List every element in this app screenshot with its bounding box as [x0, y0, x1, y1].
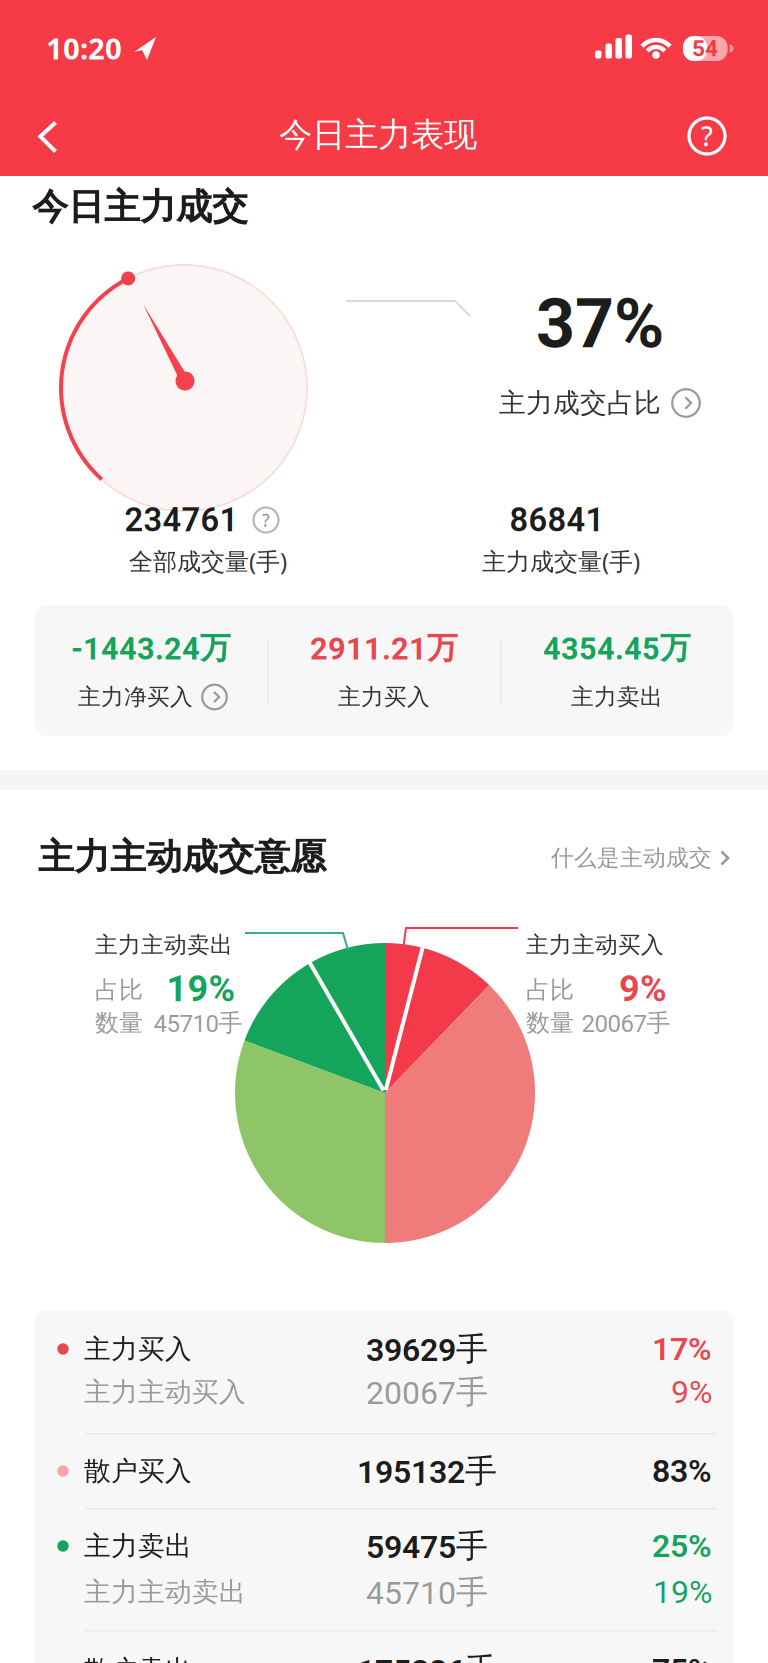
staticText: 主力净买入 — [78, 683, 193, 711]
staticText: 主力主动买入 — [526, 931, 664, 959]
staticText: 2911.21万 — [310, 629, 458, 667]
staticText: 10:20 — [46, 28, 122, 67]
staticText: 59475手 — [366, 1526, 488, 1566]
staticText: 54 — [692, 35, 718, 62]
staticText: 19% — [166, 968, 235, 1010]
staticText: 234761 — [124, 501, 238, 539]
staticText: ? — [701, 118, 713, 154]
staticText: 主力卖出 — [84, 1530, 192, 1562]
staticText: 什么是主动成交 — [551, 844, 712, 872]
staticText: -1443.24万 — [71, 629, 231, 667]
staticText: 39629手 — [366, 1329, 488, 1369]
staticText: 主力买入 — [338, 683, 430, 711]
staticText: 17% — [652, 1330, 712, 1368]
staticText: 今日主力成交 — [32, 185, 248, 229]
staticText: 19% — [653, 1573, 712, 1611]
button[interactable]: 什么是主动成交 — [551, 844, 732, 872]
button[interactable]: Info — [252, 506, 279, 533]
staticText: 175286手 — [357, 1650, 497, 1663]
staticText: 散户买入 — [84, 1455, 192, 1487]
staticText: 主力主动卖出 — [84, 1576, 246, 1608]
staticText: 9% — [671, 1373, 712, 1411]
staticText: 4354.45万 — [543, 629, 691, 667]
staticText: 86841 — [509, 501, 604, 539]
staticText: 占比 — [526, 975, 574, 1005]
staticText: 全部成交量(手) — [129, 545, 287, 577]
staticText: 20067手 — [366, 1372, 488, 1412]
button[interactable]: Back — [28, 114, 72, 158]
staticText: 9% — [619, 968, 667, 1010]
staticText: 今日主力表现 — [279, 114, 477, 155]
staticText: 45710手 — [366, 1572, 488, 1612]
staticText: 195132手 — [357, 1451, 497, 1491]
staticText: ? — [262, 508, 270, 531]
staticText: 散户卖出 — [84, 1654, 192, 1663]
staticText: 主力主动卖出 — [95, 931, 233, 959]
staticText: 45710手 — [153, 1008, 242, 1038]
staticText: 占比 — [95, 975, 143, 1005]
staticText: 数量 — [95, 1008, 143, 1038]
button[interactable]: Help — [677, 106, 737, 166]
staticText: 主力卖出 — [571, 683, 663, 711]
staticText: 75% — [652, 1651, 712, 1663]
staticText: 主力主动成交意愿 — [38, 835, 326, 879]
staticText: 主力买入 — [84, 1333, 192, 1365]
button[interactable]: 主力净买入 — [78, 683, 228, 711]
staticText: 数量 — [526, 1008, 574, 1038]
staticText: 83% — [652, 1452, 712, 1490]
staticText: 25% — [652, 1527, 712, 1565]
staticText: 37% — [536, 284, 664, 364]
button[interactable]: 主力成交占比 — [499, 387, 701, 419]
staticText: 20067手 — [581, 1008, 670, 1038]
staticText: 主力成交占比 — [499, 387, 661, 419]
staticText: 主力成交量(手) — [482, 545, 640, 577]
staticText: 主力主动买入 — [84, 1376, 246, 1408]
